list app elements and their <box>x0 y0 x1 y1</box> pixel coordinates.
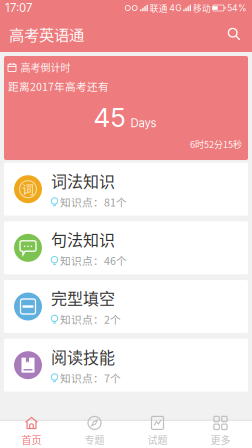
button[interactable]: 更多 <box>189 413 252 448</box>
staticText: 距离2017年高考还有 <box>8 78 109 94</box>
button[interactable]: 词 <box>4 163 248 216</box>
staticText: 首页 <box>21 432 41 447</box>
staticText: 试题 <box>147 432 167 447</box>
staticText: 专题 <box>84 432 104 447</box>
staticText: 知识点：81个 <box>60 194 127 209</box>
button[interactable]: 专题 <box>63 413 126 448</box>
staticText: 54% <box>227 3 247 13</box>
staticText: 知识点：7个 <box>60 370 121 385</box>
staticText: 知识点：2个 <box>60 311 121 327</box>
button[interactable]: Search <box>220 19 248 49</box>
staticText: 45 <box>93 102 125 133</box>
button[interactable]: 句法知识 <box>4 221 248 274</box>
staticText: 词 <box>22 180 34 198</box>
button[interactable]: 阅读技能 <box>4 339 248 392</box>
staticText: 6时52分15秒 <box>190 137 242 150</box>
staticText: 句法知识 <box>51 227 115 251</box>
staticText: Days <box>130 116 156 130</box>
staticText: 高考英语通 <box>9 23 84 45</box>
staticText: 阅读技能 <box>51 345 115 368</box>
staticText: 更多 <box>210 432 230 447</box>
staticText: 词法知识 <box>51 169 115 192</box>
staticText: 4G <box>169 3 181 13</box>
staticText: 知识点：46个 <box>60 253 127 268</box>
button[interactable]: 试题 <box>126 413 189 448</box>
button[interactable]: 首页 <box>0 413 63 448</box>
staticText: 高考倒计时 <box>20 60 70 74</box>
button[interactable]: 完型填空 <box>4 280 248 333</box>
staticText: 完型填空 <box>51 286 115 309</box>
staticText: 移动 <box>193 2 211 14</box>
staticText: 联通 <box>150 2 168 14</box>
staticText: 17:07 <box>5 1 32 15</box>
